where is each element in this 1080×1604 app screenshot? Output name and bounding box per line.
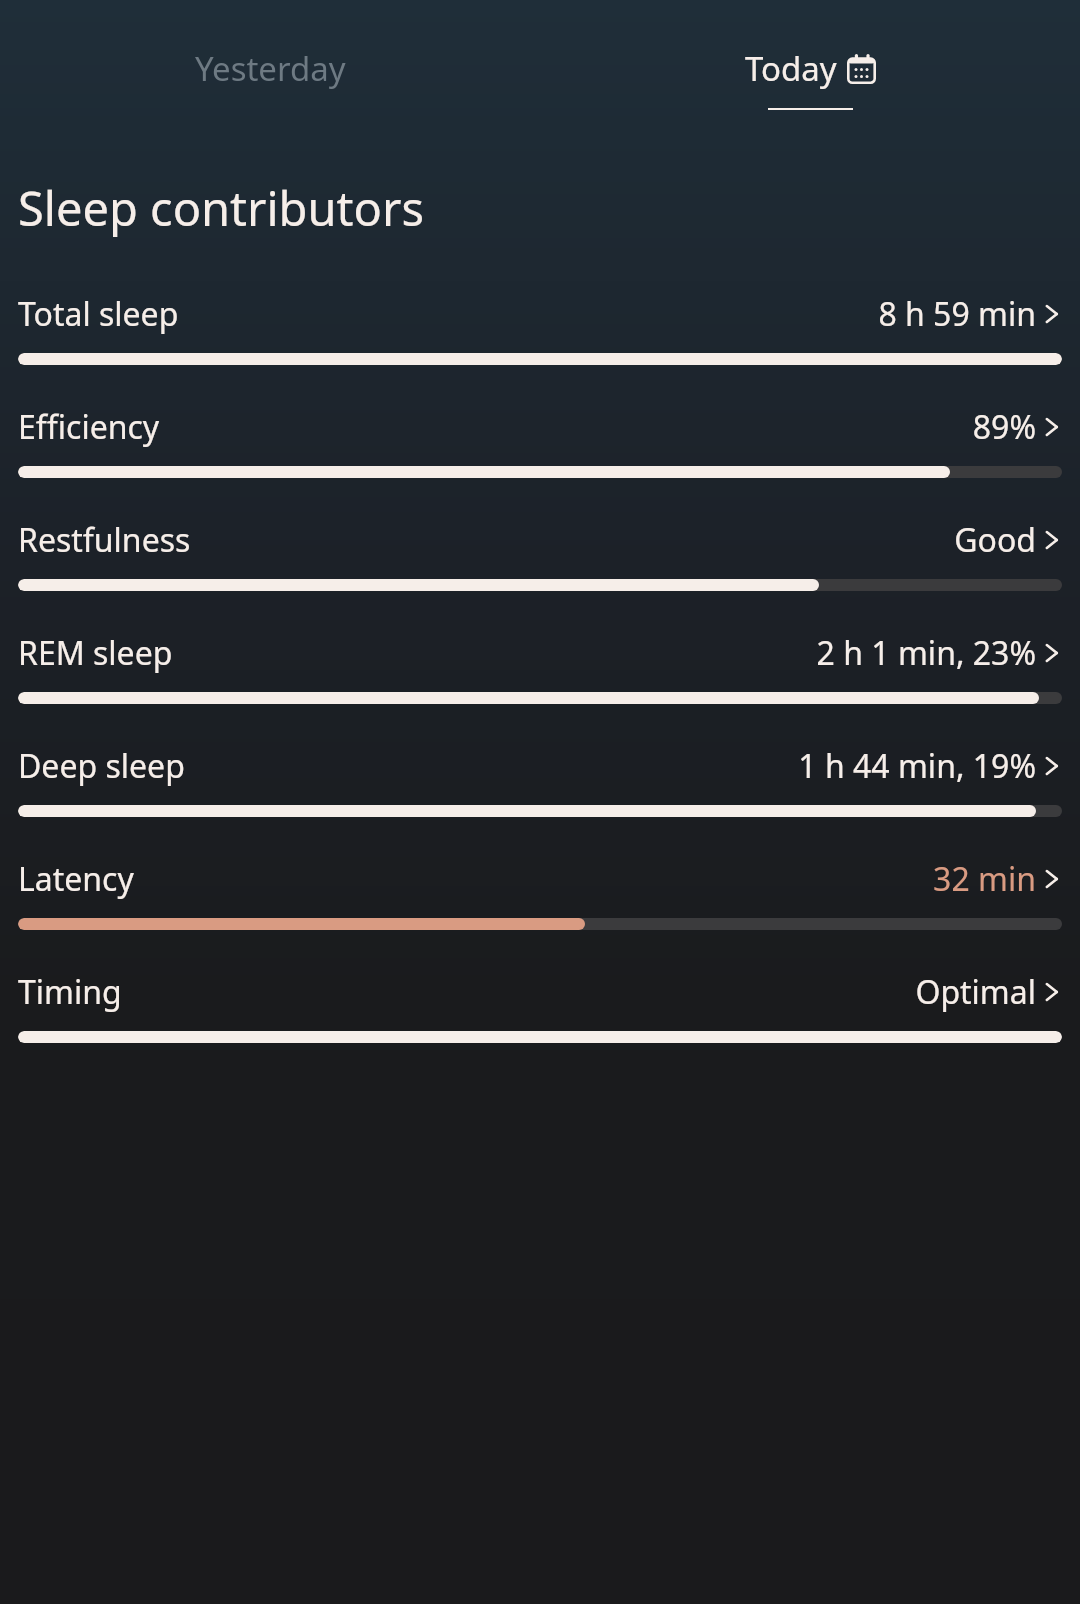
staticText: Efficiency [18, 405, 160, 449]
staticText: 1 h 44 min, 19% [798, 744, 1036, 788]
button[interactable]: Today [540, 46, 1080, 110]
staticText: Good [954, 518, 1036, 562]
staticText: REM sleep [18, 631, 173, 675]
staticText: Optimal [915, 970, 1036, 1014]
staticText: Sleep contributors [18, 176, 424, 240]
button[interactable]: Yesterday [0, 46, 540, 91]
button[interactable]: Efficiency [0, 405, 1080, 478]
staticText: Latency [18, 857, 134, 901]
button[interactable]: Latency [0, 857, 1080, 930]
staticText: Today [745, 46, 837, 91]
staticText: Yesterday [195, 46, 346, 91]
staticText: 89% [972, 405, 1036, 449]
staticText: Timing [18, 970, 122, 1014]
button[interactable]: REM sleep [0, 631, 1080, 704]
staticText: Restfulness [18, 518, 191, 562]
button[interactable]: Total sleep [0, 292, 1080, 365]
button[interactable]: Timing [0, 970, 1080, 1043]
staticText: 32 min [933, 857, 1036, 901]
staticText: 2 h 1 min, 23% [816, 631, 1036, 675]
staticText: Deep sleep [18, 744, 185, 788]
staticText: 8 h 59 min [878, 292, 1036, 336]
button[interactable]: Deep sleep [0, 744, 1080, 817]
staticText: Total sleep [18, 292, 179, 336]
button[interactable]: Restfulness [0, 518, 1080, 591]
